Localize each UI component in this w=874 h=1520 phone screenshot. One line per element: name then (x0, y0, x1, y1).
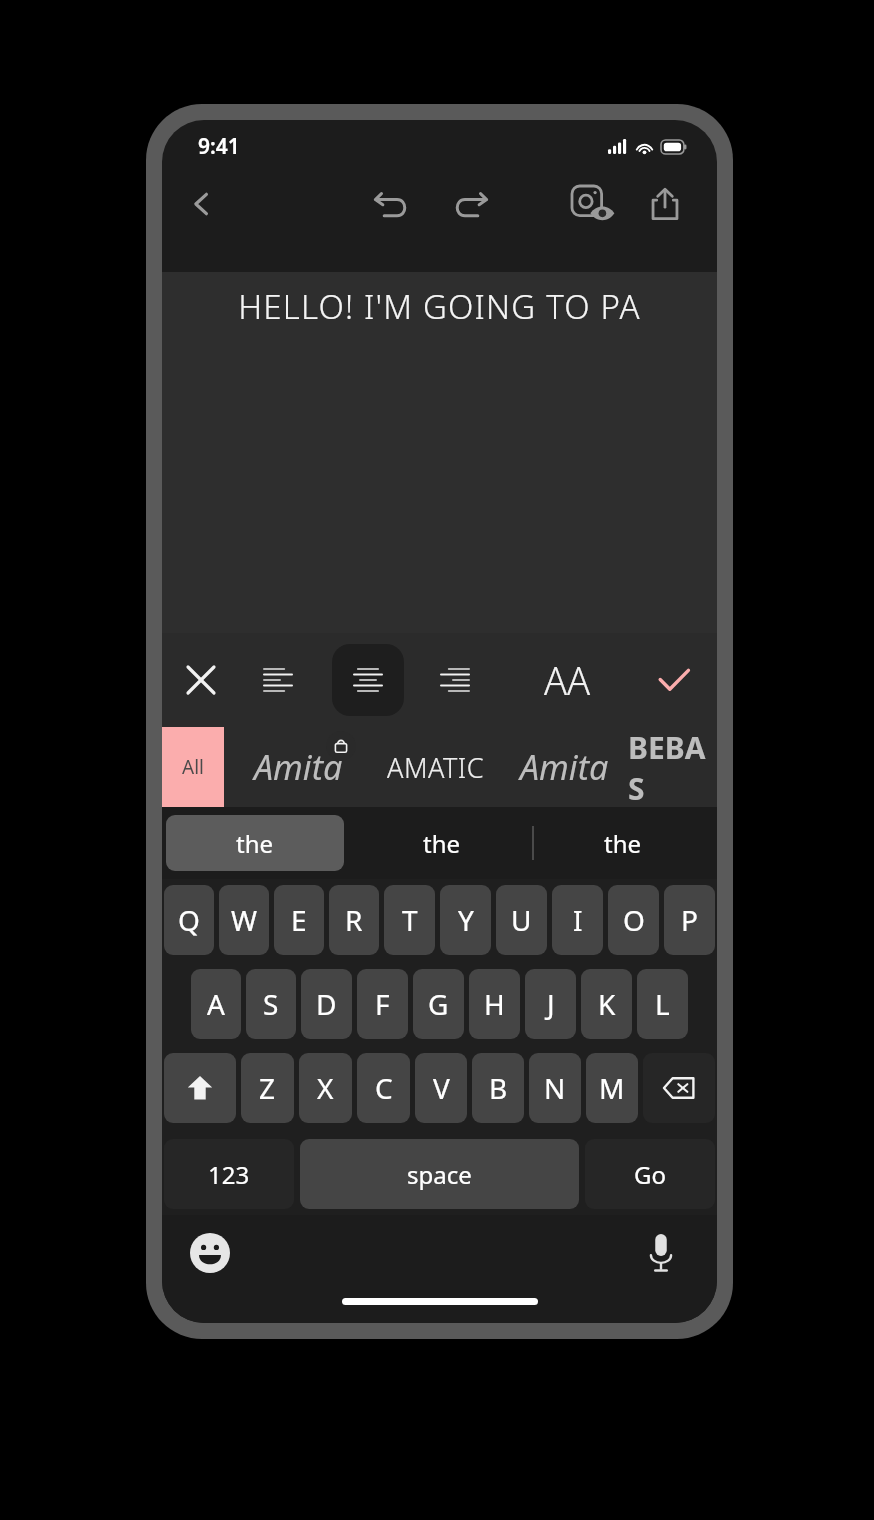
button[interactable]: U (496, 885, 547, 955)
staticText: E (291, 901, 307, 939)
staticText: X (317, 1069, 334, 1107)
button[interactable]: R (329, 885, 379, 955)
button[interactable]: G (413, 969, 464, 1039)
staticText: R (345, 901, 363, 939)
staticText: AA (544, 654, 591, 706)
staticText: the (423, 827, 461, 860)
button[interactable]: Align left (247, 649, 309, 711)
button[interactable]: Preview (563, 175, 621, 233)
staticText: V (433, 1069, 450, 1107)
staticText: T (402, 901, 418, 939)
staticText: the (236, 827, 274, 860)
staticText: F (375, 985, 390, 1023)
button[interactable]: Backspace (643, 1053, 715, 1123)
button[interactable]: H (469, 969, 520, 1039)
button[interactable]: AA (530, 643, 604, 717)
button[interactable]: D (301, 969, 352, 1039)
staticText: D (316, 985, 337, 1023)
staticText: Go (634, 1158, 666, 1191)
staticText: B (489, 1069, 508, 1107)
button[interactable]: the (533, 815, 713, 871)
button[interactable]: Emoji (184, 1227, 236, 1279)
button[interactable]: B (472, 1053, 524, 1123)
button[interactable]: 123 (164, 1139, 294, 1209)
staticText: J (547, 985, 555, 1023)
staticText: S (263, 985, 279, 1023)
button[interactable]: Y (440, 885, 491, 955)
button[interactable]: Undo (362, 175, 420, 233)
button[interactable]: I (552, 885, 603, 955)
staticText: U (511, 901, 532, 939)
staticText: N (544, 1069, 566, 1107)
staticText: Z (259, 1069, 276, 1107)
button[interactable]: P (664, 885, 715, 955)
button[interactable]: M (586, 1053, 638, 1123)
staticText: C (375, 1069, 393, 1107)
staticText: AMATIC (387, 749, 485, 786)
staticText: the (604, 827, 642, 860)
button[interactable]: Z (241, 1053, 294, 1123)
button[interactable]: space (300, 1139, 579, 1209)
staticText: BEBAS (628, 727, 717, 807)
staticText: P (681, 901, 698, 939)
button[interactable]: Share (637, 176, 693, 232)
button[interactable]: O (608, 885, 659, 955)
staticText: Y (458, 901, 474, 939)
button[interactable]: Close (170, 649, 232, 711)
button[interactable]: E (274, 885, 324, 955)
staticText: L (655, 985, 670, 1023)
button[interactable]: V (415, 1053, 467, 1123)
button[interactable]: Done (643, 649, 705, 711)
button[interactable]: Redo (442, 175, 500, 233)
button[interactable]: BEBAS (628, 727, 717, 807)
staticText: 9:41 (198, 132, 240, 161)
button[interactable]: Back (176, 178, 228, 230)
button[interactable]: the (166, 815, 344, 871)
staticText: 123 (208, 1158, 250, 1191)
button[interactable]: F (357, 969, 408, 1039)
button[interactable]: N (529, 1053, 581, 1123)
button[interactable]: Shift (164, 1053, 236, 1123)
staticText: Q (178, 901, 200, 939)
button[interactable]: the (352, 815, 532, 871)
staticText: H (484, 985, 505, 1023)
button[interactable]: K (581, 969, 632, 1039)
button[interactable]: Amita (500, 727, 628, 807)
staticText: space (407, 1158, 472, 1191)
button[interactable]: All (162, 727, 224, 807)
staticText: A (207, 985, 225, 1023)
button[interactable]: L (637, 969, 688, 1039)
staticText: M (599, 1069, 625, 1107)
staticText: Amita (520, 744, 609, 790)
button[interactable]: A (191, 969, 241, 1039)
staticText: K (598, 985, 616, 1023)
staticText: All (182, 754, 204, 780)
staticText: I (573, 901, 583, 939)
button[interactable]: Align right (424, 649, 486, 711)
button[interactable]: Align center (332, 644, 404, 716)
button[interactable]: T (384, 885, 435, 955)
staticText: W (231, 901, 258, 939)
button[interactable]: X (299, 1053, 352, 1123)
button[interactable]: S (246, 969, 296, 1039)
staticText: G (428, 985, 449, 1023)
button[interactable]: W (219, 885, 269, 955)
button[interactable]: Go (585, 1139, 715, 1209)
button[interactable]: C (357, 1053, 410, 1123)
staticText: Amita (254, 744, 343, 790)
button[interactable]: Voice input (635, 1227, 687, 1279)
button[interactable]: AMATIC (372, 727, 500, 807)
button[interactable]: Q (164, 885, 214, 955)
staticText: O (623, 901, 645, 939)
staticText: HELLO! I'M GOING TO PA (162, 284, 717, 329)
button[interactable]: Amita (224, 727, 372, 807)
button[interactable]: J (525, 969, 576, 1039)
